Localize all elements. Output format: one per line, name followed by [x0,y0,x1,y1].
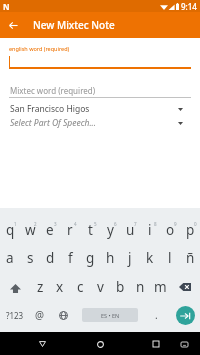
button[interactable]: Backspace [170,273,200,301]
button[interactable]: 3 [40,216,60,244]
staticText: New Mixtec Note [33,18,115,32]
staticText: 3 [54,221,57,227]
button[interactable]: Recent apps [145,333,167,355]
button[interactable]: ñ [180,244,200,272]
button[interactable]: x [50,273,70,301]
staticText: g [86,249,95,267]
staticText: z [37,278,44,296]
button[interactable]: english word (required) [0,42,200,70]
staticText: 8 [154,221,157,227]
button[interactable]: 2 [20,216,40,244]
staticText: u [126,221,135,239]
button[interactable]: San Francisco Higos [0,102,200,116]
button[interactable]: Enter [170,301,200,329]
button[interactable]: Shift [0,273,30,301]
staticText: x [56,278,64,296]
button[interactable]: ?123 [0,301,30,329]
staticText: h [106,249,115,267]
staticText: c [77,278,84,296]
button[interactable]: f [60,244,80,272]
staticText: b [116,278,125,296]
button[interactable]: . [142,301,170,329]
button[interactable]: n [130,273,150,301]
staticText: f [68,249,73,267]
button[interactable]: c [70,273,90,301]
button[interactable]: l [160,244,180,272]
button[interactable]: Mixtec word (required) [0,83,200,101]
button[interactable]: ES • EN [82,308,138,322]
staticText: ñ [186,249,195,267]
staticText: e [46,221,54,239]
button[interactable]: v [90,273,110,301]
button[interactable]: Select Part Of Speech... [0,116,200,130]
button[interactable]: b [110,273,130,301]
button[interactable]: 1 [0,216,20,244]
button[interactable]: h [100,244,120,272]
staticText: 2 [34,221,37,227]
staticText: 9 [174,221,177,227]
staticText: i [148,221,152,239]
staticText: r [67,221,73,239]
staticText: ES • EN [101,312,120,319]
staticText: t [88,221,93,239]
button[interactable]: 4 [60,216,80,244]
staticText: v [97,278,104,296]
staticText: Mixtec word (required) [10,85,96,96]
staticText: d [46,249,55,267]
staticText: 6 [114,221,117,227]
button[interactable]: 8 [140,216,160,244]
staticText: San Francisco Higos [10,103,90,115]
staticText: N [3,1,10,12]
button[interactable]: z [30,273,50,301]
staticText: w [25,221,36,239]
staticText: l [168,249,172,267]
button[interactable]: 9 [160,216,180,244]
button[interactable]: 5 [80,216,100,244]
button[interactable]: 6 [100,216,120,244]
staticText: j [128,249,132,267]
button[interactable]: Back [31,333,53,355]
staticText: ?123 [6,310,24,321]
staticText: @ [35,308,44,322]
button[interactable]: 7 [120,216,140,244]
button[interactable]: Hide keyboard [173,333,195,355]
button[interactable]: g [80,244,100,272]
button[interactable]: s [20,244,40,272]
staticText: Select Part Of Speech... [10,117,96,129]
staticText: 0 [194,221,197,227]
button[interactable]: 0 [180,216,200,244]
button[interactable]: Change keyboard language [48,301,78,329]
staticText: q [6,221,15,239]
staticText: n [136,278,145,296]
staticText: 5 [94,221,97,227]
button[interactable]: a [0,244,20,272]
staticText: 4 [74,221,77,227]
staticText: o [166,221,175,239]
button[interactable]: k [140,244,160,272]
staticText: 1 [14,221,17,227]
button[interactable]: m [150,273,170,301]
staticText: p [186,221,195,239]
staticText: s [27,249,34,267]
button[interactable]: Navigate up [0,12,26,38]
staticText: y [107,221,114,239]
button[interactable]: Home [89,333,111,355]
button[interactable]: @ [30,301,48,329]
staticText: k [146,249,154,267]
staticText: m [154,278,167,296]
staticText: 9:14 [181,1,197,12]
staticText: a [6,249,14,267]
staticText: 7 [134,221,137,227]
button[interactable]: j [120,244,140,272]
button[interactable]: d [40,244,60,272]
staticText: . [155,308,158,322]
staticText: english word (required) [9,45,70,52]
